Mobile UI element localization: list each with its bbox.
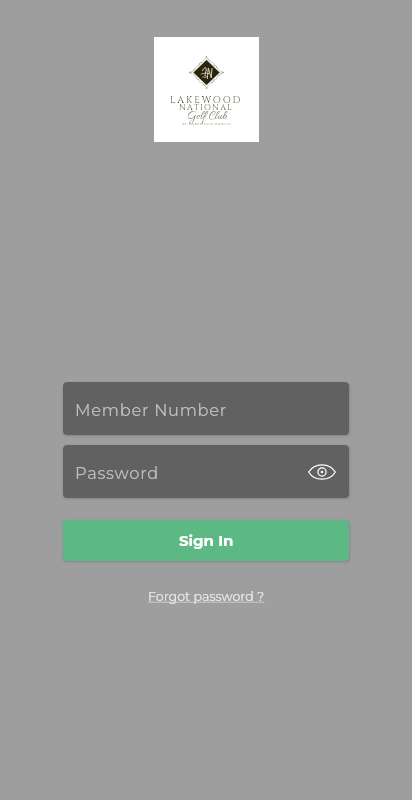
button[interactable]: Password — [63, 445, 349, 498]
staticText: Password — [75, 463, 159, 483]
staticText: Golf Club — [187, 110, 227, 124]
button[interactable]: Member Number — [63, 382, 349, 435]
staticText: Sign In — [179, 531, 234, 549]
button[interactable]: Show password — [306, 456, 338, 488]
button[interactable]: Sign In — [63, 520, 349, 561]
staticText: Forgot password ? — [148, 589, 265, 604]
staticText: AT LAKEWOOD RANCH — [182, 122, 232, 127]
staticText: Member Number — [75, 400, 228, 420]
button[interactable]: Forgot password ? — [140, 583, 273, 606]
staticText: LAKEWOOD — [170, 94, 243, 107]
staticText: NATIONAL — [179, 102, 234, 113]
